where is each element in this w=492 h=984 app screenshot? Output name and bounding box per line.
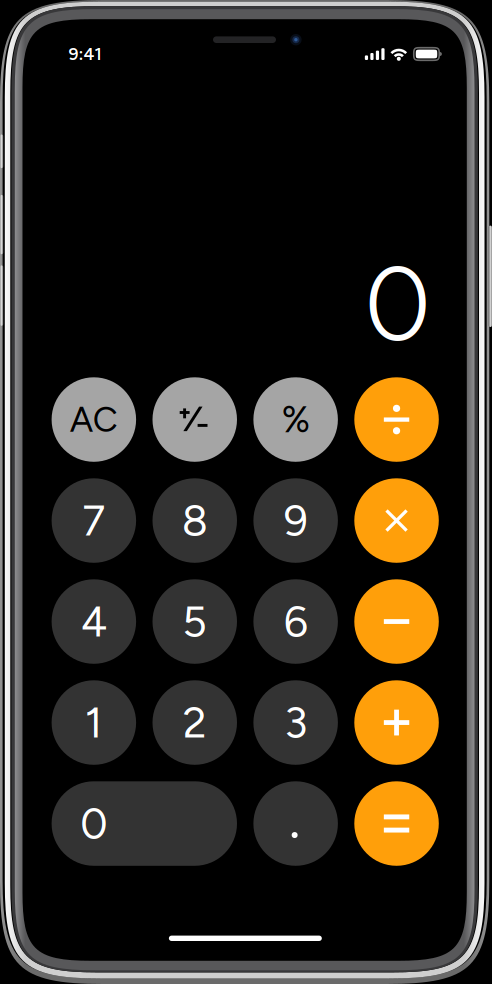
staticText: 9:41 bbox=[68, 44, 101, 64]
button[interactable]: 7 bbox=[52, 478, 136, 563]
staticText: 0 bbox=[365, 241, 431, 366]
staticText: 0 bbox=[80, 798, 107, 849]
button[interactable]: 3 bbox=[253, 680, 338, 765]
staticText: 9 bbox=[284, 495, 308, 546]
button[interactable]: All clear bbox=[52, 377, 136, 462]
button[interactable]: Plus minus bbox=[152, 377, 237, 462]
button[interactable]: 1 bbox=[52, 680, 136, 765]
staticText: % bbox=[282, 398, 310, 441]
button[interactable]: Multiply bbox=[354, 478, 439, 563]
button[interactable]: 9 bbox=[253, 478, 338, 563]
staticText: 2 bbox=[183, 697, 207, 748]
button[interactable]: Percent bbox=[253, 377, 338, 462]
staticText: 8 bbox=[182, 495, 208, 546]
button[interactable]: Divide bbox=[354, 377, 439, 462]
staticText: 7 bbox=[82, 495, 105, 546]
button[interactable]: 8 bbox=[152, 478, 237, 563]
button[interactable]: 6 bbox=[253, 579, 338, 664]
button[interactable]: 4 bbox=[52, 579, 136, 664]
button[interactable]: Decimal point bbox=[253, 781, 338, 866]
staticText: 3 bbox=[284, 697, 307, 748]
button[interactable]: Equals bbox=[354, 781, 439, 866]
button[interactable]: 2 bbox=[152, 680, 237, 765]
button[interactable]: Zero bbox=[52, 781, 237, 866]
staticText: 4 bbox=[81, 596, 107, 647]
staticText: 1 bbox=[85, 697, 103, 748]
staticText: AC bbox=[70, 399, 118, 440]
button[interactable]: Minus bbox=[354, 579, 439, 664]
button[interactable]: 5 bbox=[152, 579, 237, 664]
staticText: 6 bbox=[284, 596, 308, 647]
staticText: 5 bbox=[182, 596, 207, 647]
button[interactable]: Plus bbox=[354, 680, 439, 765]
